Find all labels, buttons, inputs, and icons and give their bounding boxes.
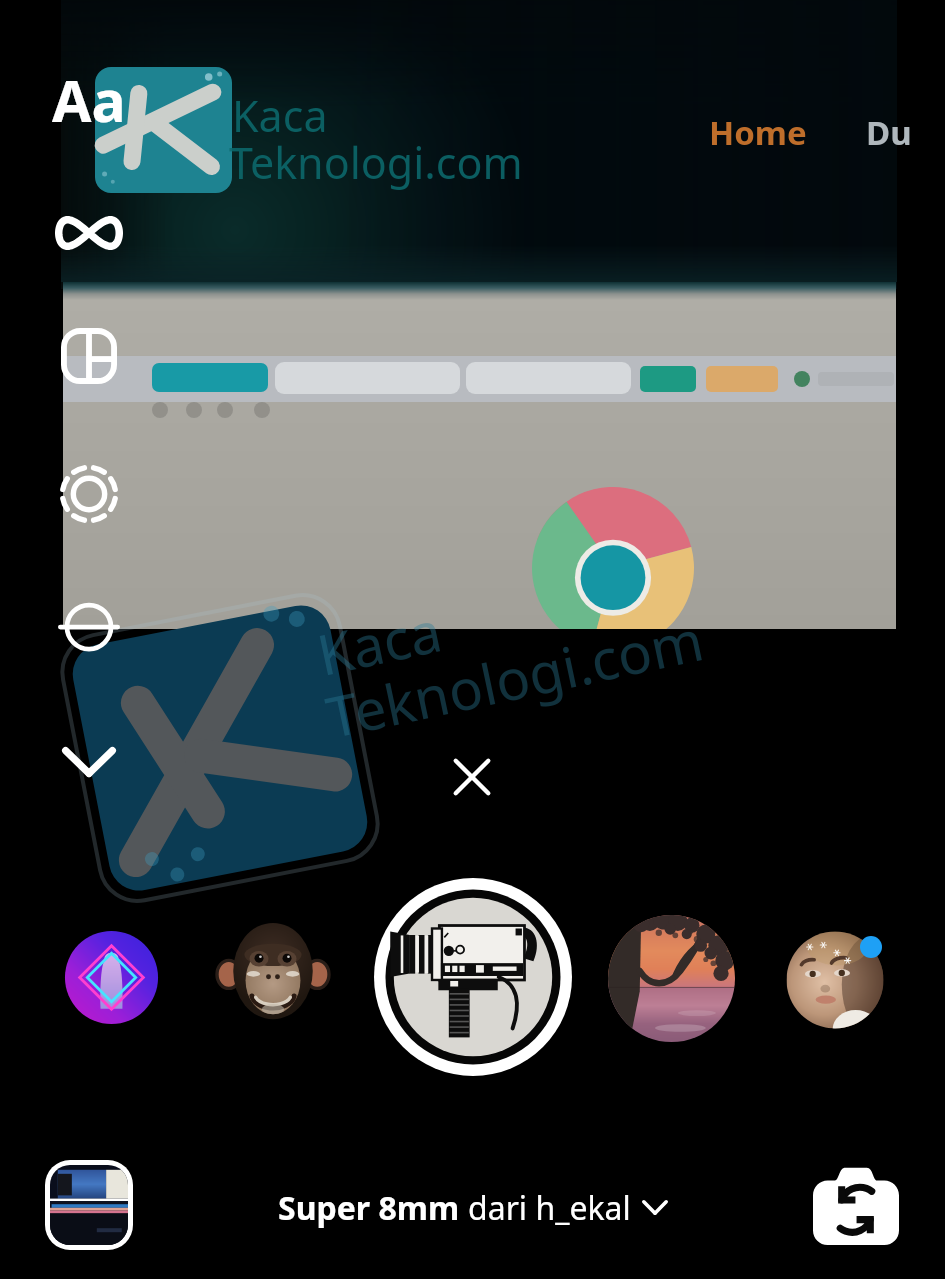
staticText: Du — [866, 110, 912, 155]
button[interactable]: Super 8mm effect, selected — [374, 878, 572, 1076]
button[interactable]: Close — [434, 739, 510, 815]
staticText: Teknologi.com — [320, 600, 710, 754]
button[interactable]: Sunset effect — [608, 915, 735, 1042]
staticText: Aa — [52, 61, 126, 139]
button[interactable]: Gallery — [50, 1165, 128, 1245]
staticText: Teknologi.com — [229, 133, 523, 192]
button[interactable]: Super 8mm — [268, 1180, 678, 1234]
button[interactable]: Neon diamond effect — [64, 930, 159, 1025]
staticText: Home — [709, 110, 807, 155]
staticText: Kaca — [232, 86, 328, 145]
button[interactable]: More options — [47, 720, 131, 804]
button[interactable]: Layout — [47, 314, 131, 398]
button[interactable]: Monkey effect — [217, 919, 329, 1031]
staticText: Kaca — [310, 591, 448, 692]
button[interactable]: Face effect — [775, 920, 900, 1045]
button[interactable]: Boomerang — [47, 191, 131, 275]
staticText: dari h_ekal — [468, 1186, 631, 1228]
button[interactable]: Align — [47, 585, 131, 669]
button[interactable]: Timer — [47, 452, 131, 536]
staticText: Super 8mm — [278, 1186, 468, 1228]
button[interactable]: Switch camera — [806, 1158, 906, 1252]
button[interactable]: Text tool — [44, 60, 134, 140]
